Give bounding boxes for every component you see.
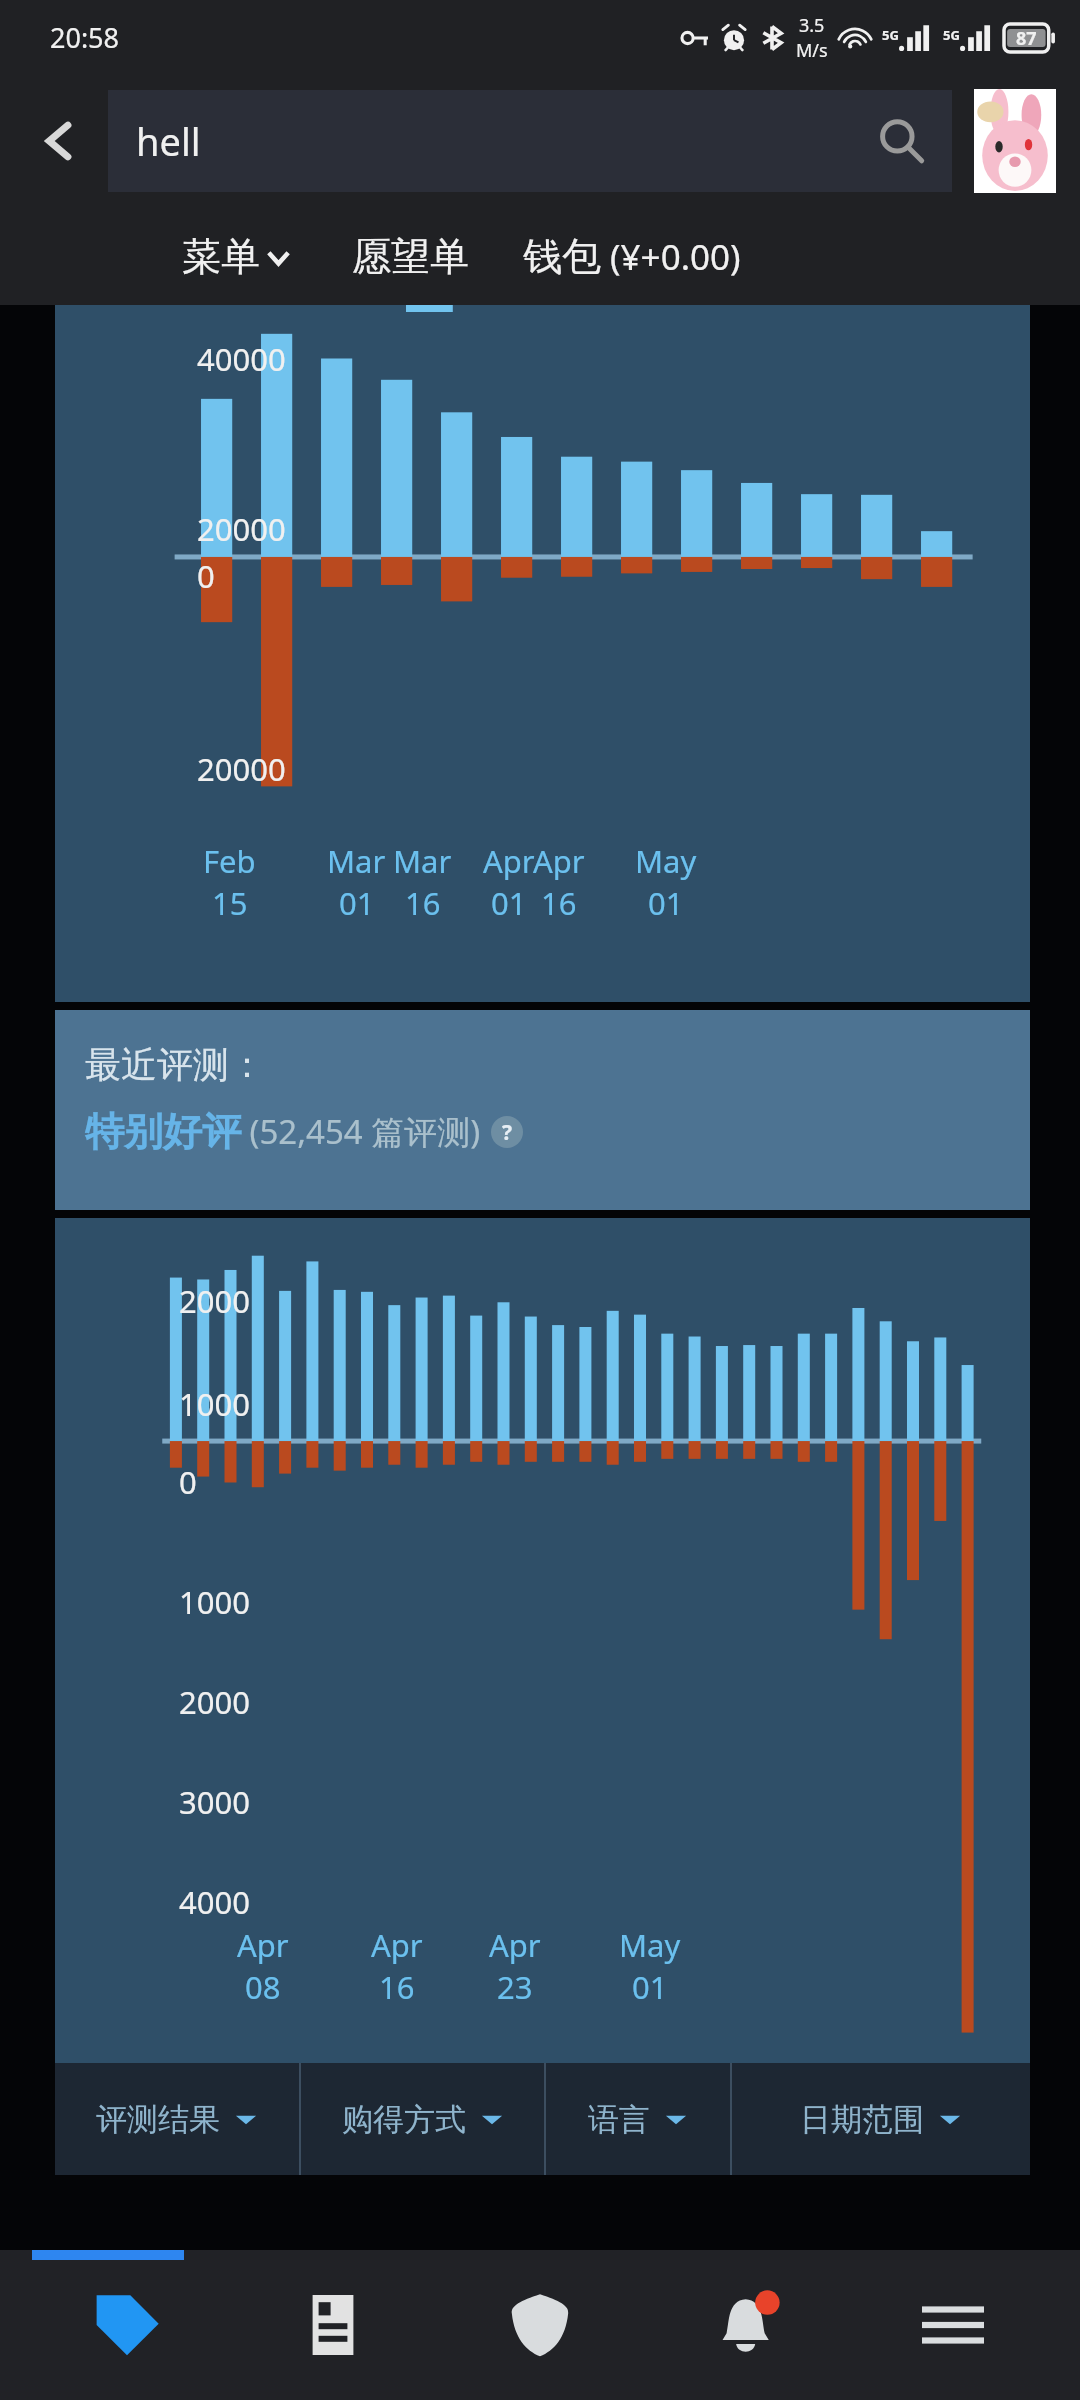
staticText: 01	[632, 1966, 668, 2008]
staticText: 评测结果	[96, 2100, 220, 2139]
staticText: 3000	[179, 1781, 250, 1823]
other: Search	[878, 118, 924, 164]
staticText: 08	[245, 1966, 281, 2008]
staticText: hell	[136, 115, 878, 167]
staticText: 购得方式	[342, 2100, 466, 2139]
staticText: 4000	[179, 1881, 250, 1923]
button[interactable]: 愿望单	[342, 222, 479, 291]
staticText: 40000	[197, 338, 286, 380]
staticText: 0	[179, 1461, 197, 1503]
staticText: 23	[497, 1966, 533, 2008]
button[interactable]: hell	[108, 90, 952, 192]
staticText: 1000	[179, 1383, 250, 1425]
staticText: M/s	[796, 38, 828, 63]
button[interactable]: 钱包	[513, 222, 751, 291]
staticText: 15	[212, 882, 248, 924]
staticText: 20000	[197, 508, 286, 550]
staticText: 0	[197, 555, 215, 597]
staticText: Mar	[393, 840, 452, 882]
staticText: 01	[491, 882, 527, 924]
button[interactable]: 日期范围	[732, 2063, 1030, 2175]
staticText: May	[619, 1924, 681, 1966]
staticText: Apr	[483, 840, 535, 882]
staticText: Apr	[533, 840, 585, 882]
staticText: ?	[502, 1118, 513, 1147]
staticText: 2000	[179, 1280, 250, 1322]
staticText: 钱包	[523, 232, 601, 281]
staticText: 1000	[179, 1581, 250, 1623]
staticText: 20:58	[50, 19, 120, 56]
staticText: Feb	[203, 840, 256, 882]
staticText: 日期范围	[800, 2100, 924, 2139]
button[interactable]: Store	[47, 2250, 207, 2400]
button[interactable]: 评测结果	[55, 2063, 299, 2175]
button[interactable]: 购得方式	[301, 2063, 544, 2175]
button[interactable]: Community	[460, 2250, 620, 2400]
staticText: 16	[541, 882, 577, 924]
button[interactable]: 最近评测：	[55, 1010, 1030, 1210]
staticText: May	[635, 840, 697, 882]
staticText: 5G	[882, 26, 899, 44]
staticText: 3.5	[799, 13, 825, 38]
staticText: 2000	[179, 1681, 250, 1723]
button[interactable]: Help	[491, 1116, 523, 1148]
staticText: Mar	[327, 840, 386, 882]
staticText: (52,454 篇评测)	[241, 1109, 481, 1154]
button[interactable]: Library	[253, 2250, 413, 2400]
staticText: Apr	[237, 1924, 289, 1966]
staticText: 16	[405, 882, 441, 924]
staticText: 87	[1016, 26, 1037, 51]
button[interactable]: Profile	[974, 89, 1056, 193]
staticText: 语言	[588, 2100, 650, 2139]
button[interactable]: Back	[24, 105, 96, 177]
staticText: 01	[339, 882, 375, 924]
button[interactable]: Menu	[873, 2250, 1033, 2400]
staticText: Apr	[371, 1924, 423, 1966]
button[interactable]: Notifications	[667, 2250, 827, 2400]
button[interactable]: 菜单	[178, 222, 294, 291]
staticText: (¥+0.00)	[601, 233, 741, 281]
staticText: 特别好评	[85, 1107, 241, 1156]
button[interactable]: 语言	[546, 2063, 730, 2175]
staticText: 5G	[943, 26, 960, 44]
staticText: 菜单	[182, 232, 260, 281]
staticText: 20000	[197, 748, 286, 790]
staticText: 最近评测：	[85, 1042, 265, 1087]
staticText: 16	[379, 1966, 415, 2008]
staticText: 01	[648, 882, 684, 924]
staticText: Apr	[489, 1924, 541, 1966]
